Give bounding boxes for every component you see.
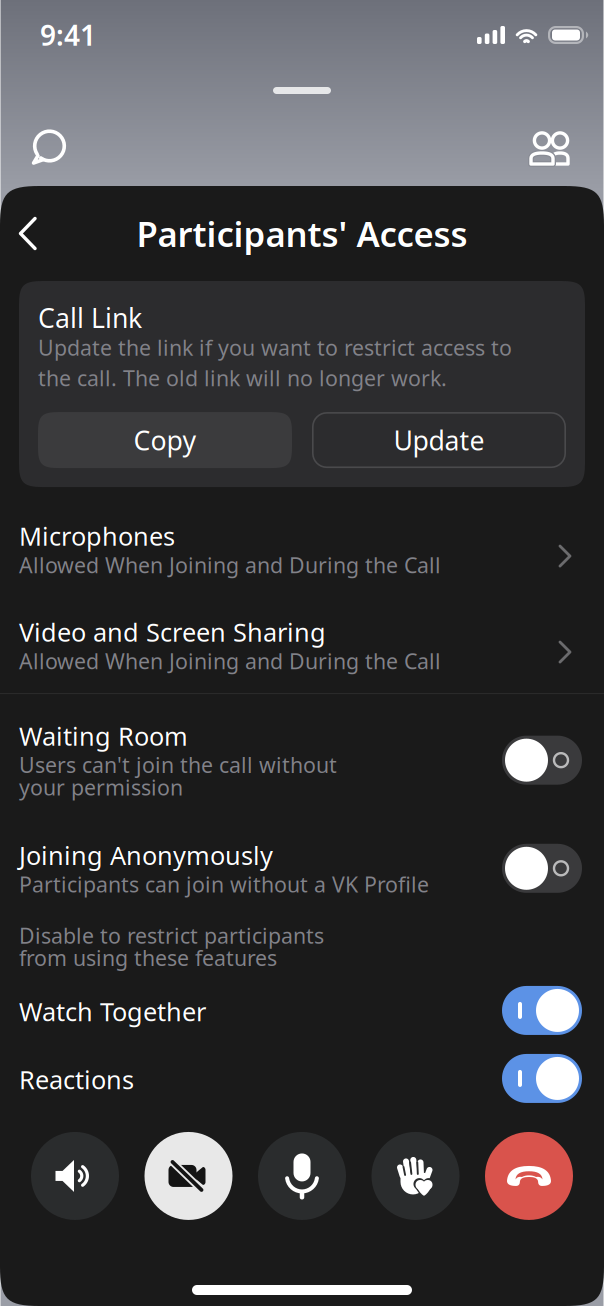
button[interactable]: Back bbox=[4, 209, 52, 257]
staticText: Copy bbox=[133, 422, 196, 458]
staticText: Microphones bbox=[19, 519, 175, 553]
staticText: Video and Screen Sharing bbox=[19, 615, 326, 649]
button[interactable]: Participants bbox=[523, 124, 579, 172]
button[interactable]: Speaker bbox=[31, 1132, 119, 1220]
staticText: Users can't join the call without bbox=[19, 751, 337, 779]
staticText: Allowed When Joining and During the Call bbox=[19, 647, 441, 675]
button[interactable]: Copy bbox=[38, 412, 292, 468]
button[interactable]: Microphone bbox=[258, 1132, 346, 1220]
button[interactable]: Chat bbox=[20, 124, 76, 172]
staticText: from using these features bbox=[19, 944, 277, 972]
staticText: Watch Together bbox=[19, 995, 206, 1028]
button[interactable]: Watch Together bbox=[0, 972, 604, 1045]
button[interactable]: Microphones bbox=[0, 487, 604, 593]
staticText: Disable to restrict participants bbox=[19, 921, 324, 950]
staticText: 9:41 bbox=[40, 16, 96, 54]
staticText: the call. The old link will no longer wo… bbox=[38, 364, 447, 392]
staticText: Waiting Room bbox=[19, 719, 188, 753]
button[interactable]: End call bbox=[485, 1132, 573, 1220]
button[interactable]: Waiting Room bbox=[0, 694, 604, 817]
staticText: Update bbox=[393, 422, 484, 458]
staticText: Participants' Access bbox=[136, 210, 467, 256]
button[interactable]: Joining Anonymously bbox=[0, 817, 604, 906]
button[interactable]: Video and Screen Sharing bbox=[0, 593, 604, 693]
button[interactable]: Reactions bbox=[0, 1045, 604, 1113]
staticText: Call Link bbox=[38, 300, 142, 335]
button[interactable]: Raise hand bbox=[371, 1132, 459, 1220]
staticText: Participants can join without a VK Profi… bbox=[19, 870, 429, 898]
staticText: Reactions bbox=[19, 1063, 134, 1096]
staticText: Update the link if you want to restrict … bbox=[38, 333, 512, 362]
staticText: Allowed When Joining and During the Call bbox=[19, 551, 441, 579]
button[interactable]: Update bbox=[312, 412, 566, 468]
button[interactable]: Turn camera on bbox=[144, 1132, 232, 1220]
staticText: your permission bbox=[19, 773, 183, 801]
staticText: Joining Anonymously bbox=[19, 838, 273, 872]
